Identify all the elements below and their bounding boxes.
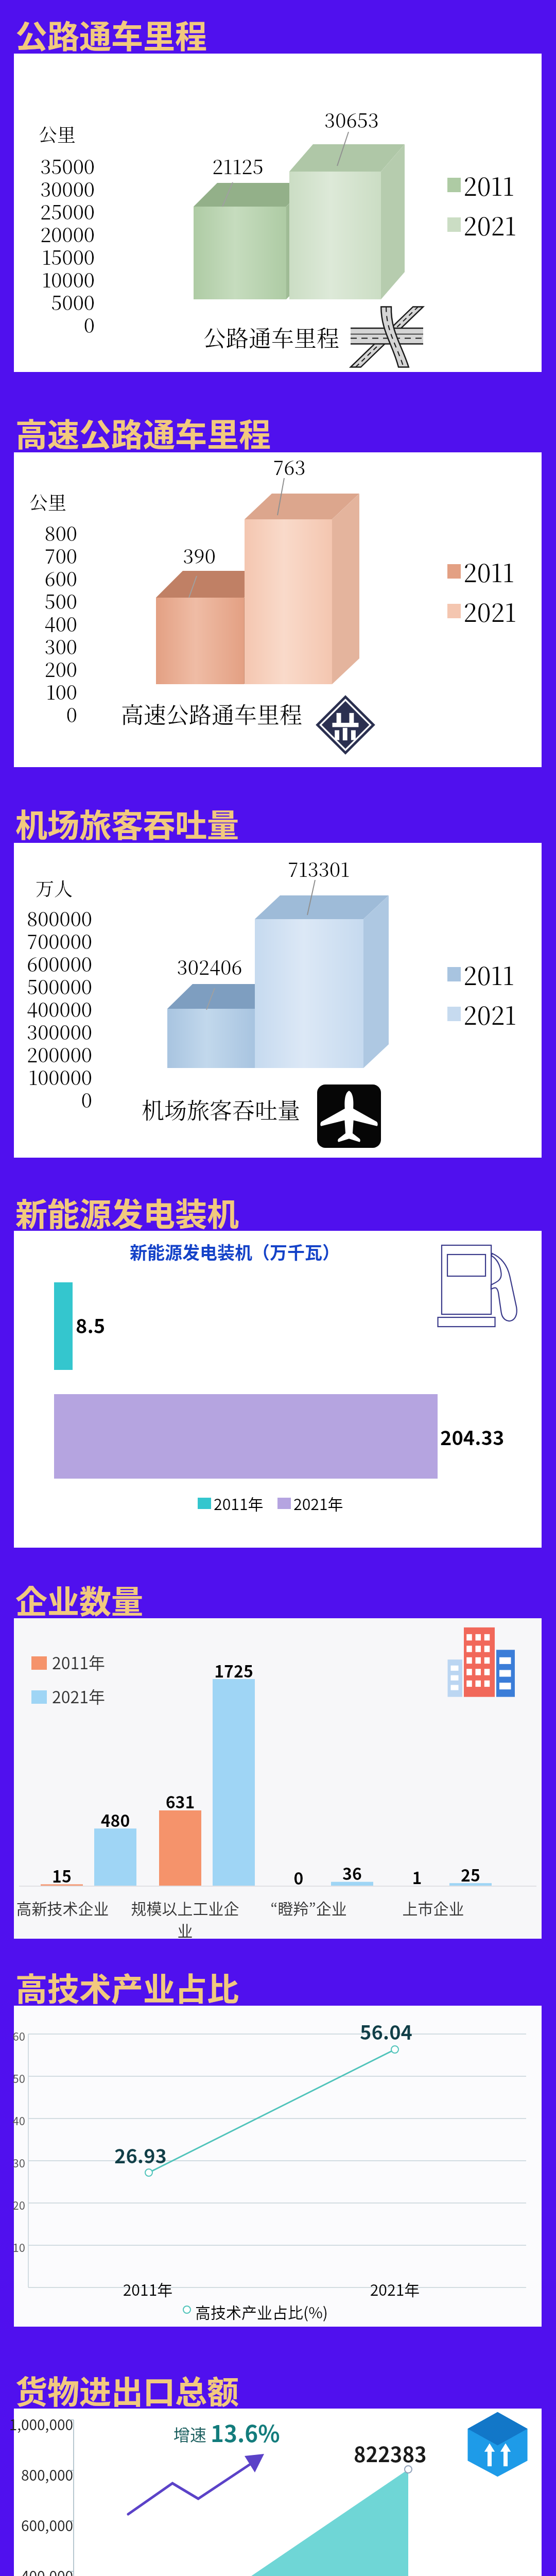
staticText: 631 [149,1789,212,1813]
button[interactable]: 新能源发电装机（万千瓦） [14,1231,542,1548]
staticText: 0 [14,1085,92,1113]
staticText: 万人 [36,875,73,902]
button[interactable]: 高速公路通车里程 [15,410,271,456]
staticText: 5000 [16,287,95,316]
staticText: 50 [4,2070,25,2086]
button[interactable]: 公里 [14,452,542,767]
staticText: 100000 [14,1062,92,1091]
staticText: 600000 [14,949,92,977]
staticText: 2011 [463,554,514,589]
staticText: 36 [321,1861,384,1885]
staticText: 20000 [16,219,95,248]
staticText: 500 [16,586,77,615]
staticText: 40 [4,2112,25,2128]
staticText: 机场旅客吞吐量 [142,1093,300,1125]
staticText: 300000 [14,1017,92,1045]
staticText: “瞪羚”企业 [261,1896,356,1919]
staticText: 2021 [463,594,516,629]
staticText: 规模以上工业企业 [125,1896,246,1941]
staticText: 2021年 [364,2278,426,2300]
staticText: 10000 [16,265,95,293]
staticText: 1725 [202,1658,265,1682]
button[interactable]: 万人 [14,843,542,1158]
staticText: 公里 [29,488,67,515]
staticText: 新能源发电装机 [15,1189,239,1235]
staticText: 新能源发电装机（万千瓦） [130,1239,340,1264]
staticText: 204.33 [440,1422,505,1451]
staticText: 600,000 [4,2515,73,2536]
staticText: 200 [16,654,77,683]
staticText: 高速公路通车里程 [121,697,302,730]
staticText: 25000 [16,197,95,225]
staticText: 高技术产业占比(%) [195,2300,328,2323]
staticText: 1,000,000 [4,2414,73,2435]
staticText: 公路通车里程 [203,320,339,353]
staticText: 机场旅客吞吐量 [15,800,239,846]
staticText: 高速公路通车里程 [15,410,271,456]
button[interactable]: 机场旅客吞吐量 [15,800,239,846]
staticText: 35000 [16,151,95,180]
staticText: 100 [16,677,77,705]
staticText: 13.6% [211,2416,280,2449]
staticText: 700 [16,541,77,569]
staticText: 300 [16,632,77,660]
staticText: 2021 [463,996,516,1032]
other: Expressway sign icon [315,694,376,755]
staticText: 56.04 [360,2017,413,2045]
button[interactable]: 公路通车里程 [15,11,207,58]
staticText: 200000 [14,1040,92,1068]
staticText: 400,000 [4,2565,73,2576]
button[interactable]: 60 [14,2006,542,2327]
staticText: 2011 [463,167,514,203]
staticText: 763 [258,452,320,481]
staticText: 2021年 [293,1492,343,1514]
staticText: 0 [16,310,95,338]
staticText: 500000 [14,972,92,1000]
staticText: 2011年 [117,2278,179,2300]
staticText: 公路通车里程 [15,11,207,58]
staticText: 60 [4,2027,25,2044]
staticText: 上市企业 [386,1896,481,1919]
staticText: 713301 [277,854,360,883]
staticText: 600 [16,564,77,592]
staticText: 390 [168,541,230,569]
staticText: 2011年 [52,1650,106,1674]
staticText: 货物进出口总额 [15,2367,239,2413]
staticText: 2021 [463,207,516,243]
other: Fuel pump icon [435,1235,530,1338]
staticText: 15000 [16,242,95,270]
staticText: 2021年 [52,1684,106,1708]
button[interactable]: 新能源发电装机 [15,1189,239,1235]
other: Airplane icon [317,1084,381,1148]
staticText: 1 [386,1865,448,1889]
button[interactable]: 货物进出口总额 [15,2367,239,2413]
staticText: 20 [4,2196,25,2213]
staticText: 高新技术企业 [15,1896,110,1919]
staticText: 21125 [207,151,269,180]
button[interactable]: 2011年 [14,1618,542,1939]
staticText: 25 [439,1862,502,1886]
button[interactable]: 1,000,000 [14,2409,542,2576]
staticText: 30 [4,2154,25,2171]
other: Import export box icon [463,2409,532,2478]
staticText: 15 [30,1863,93,1887]
staticText: 400 [16,609,77,637]
staticText: 企业数量 [15,1577,144,1623]
staticText: 高技术产业占比 [15,1964,239,2010]
staticText: 30653 [321,105,383,133]
button[interactable]: 公里 [14,54,542,372]
other: Highway interchange icon [351,306,423,368]
staticText: 8.5 [76,1311,106,1339]
staticText: 700000 [14,926,92,955]
staticText: 400000 [14,994,92,1023]
staticText: 0 [16,700,77,728]
button[interactable]: 企业数量 [15,1577,144,1623]
staticText: 26.93 [114,2141,167,2169]
button[interactable]: 高技术产业占比 [15,1964,239,2010]
staticText: 2011年 [214,1492,264,1514]
other: Buildings icon [445,1624,523,1699]
staticText: 0 [267,1866,330,1889]
staticText: 822383 [354,2438,427,2468]
staticText: 增速 [173,2422,207,2446]
staticText: 10 [4,2239,25,2255]
